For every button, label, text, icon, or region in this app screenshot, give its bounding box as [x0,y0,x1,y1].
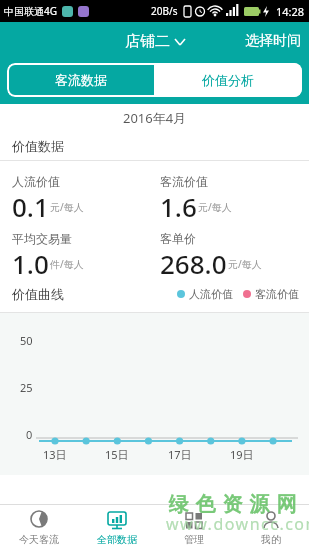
staticText: 平均交易量 [12,231,72,246]
staticText: 13日 [43,447,67,462]
staticText: 2016年4月 [123,109,187,127]
staticText: 50 [20,333,33,348]
staticText: 今天客流 [19,533,59,546]
staticText: 20B/s [151,4,178,18]
staticText: 人流价值 [189,287,233,301]
staticText: 0.1 [12,189,49,219]
button[interactable]: 店铺二 [125,32,185,51]
button[interactable]: 全部数据 [78,505,155,550]
button[interactable]: 管理 [155,505,232,550]
staticText: 17日 [168,447,192,462]
staticText: 268.0 [160,246,227,276]
staticText: 25 [20,380,33,395]
staticText: 0 [26,427,33,442]
button[interactable]: 今天客流 [0,505,78,550]
staticText: 元/每人 [198,200,232,214]
staticText: 19日 [230,447,254,462]
staticText: 价值数据 [12,138,64,154]
button[interactable]: 我的 [232,505,309,550]
staticText: 14:28 [276,4,305,19]
button[interactable]: 客流数据 [7,63,154,97]
staticText: 元/每人 [228,257,262,271]
staticText: 客流数据 [55,72,107,88]
staticText: 客流价值 [255,287,299,301]
staticText: 客流价值 [160,174,208,189]
staticText: 15日 [105,447,129,462]
staticText: 店铺二 [125,32,170,51]
staticText: 客单价 [160,231,196,246]
staticText: 件/每人 [50,257,84,271]
staticText: 绿色资源网 [165,492,300,517]
staticText: www.downcc.com [166,513,309,535]
staticText: 选择时间 [245,32,301,50]
button[interactable]: 选择时间 [245,32,309,50]
staticText: 1.0 [12,246,49,276]
staticText: 管理 [184,533,204,546]
staticText: 1.6 [160,189,197,219]
staticText: 人流价值 [12,174,60,189]
staticText: 元/每人 [50,200,84,214]
button[interactable]: 价值分析 [154,63,302,97]
staticText: 价值分析 [202,72,254,88]
staticText: 价值曲线 [12,286,64,302]
staticText: 全部数据 [97,533,137,546]
staticText: 中国联通4G [4,4,57,18]
staticText: 我的 [261,533,281,546]
